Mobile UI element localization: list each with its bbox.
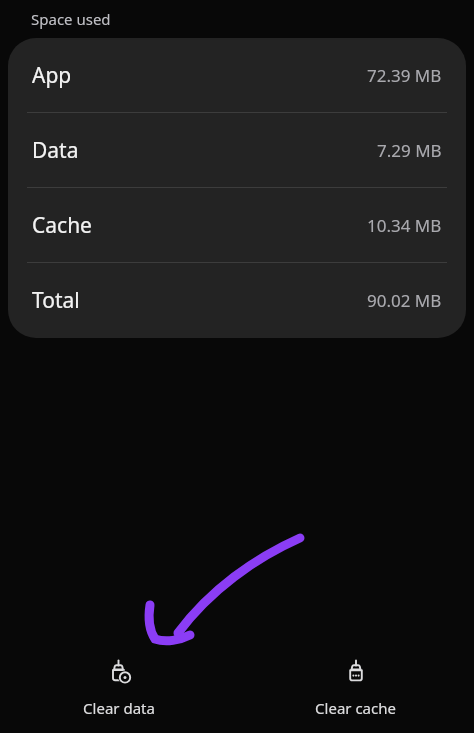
button[interactable]: Data bbox=[8, 113, 466, 187]
staticText: Data bbox=[32, 136, 79, 165]
staticText: Space used bbox=[31, 9, 111, 29]
staticText: Clear data bbox=[83, 698, 155, 718]
staticText: Total bbox=[32, 286, 80, 315]
button[interactable]: Clear data bbox=[83, 650, 155, 726]
staticText: Cache bbox=[32, 211, 92, 240]
staticText: 10.34 MB bbox=[367, 214, 442, 237]
button[interactable]: App bbox=[8, 38, 466, 112]
button[interactable]: Clear cache bbox=[315, 650, 396, 726]
staticText: App bbox=[32, 61, 72, 90]
staticText: 72.39 MB bbox=[367, 64, 442, 87]
button[interactable]: Cache bbox=[8, 188, 466, 262]
staticText: 7.29 MB bbox=[377, 139, 442, 162]
staticText: 90.02 MB bbox=[367, 289, 442, 312]
staticText: Clear cache bbox=[315, 698, 396, 718]
button[interactable]: Total bbox=[8, 263, 466, 337]
